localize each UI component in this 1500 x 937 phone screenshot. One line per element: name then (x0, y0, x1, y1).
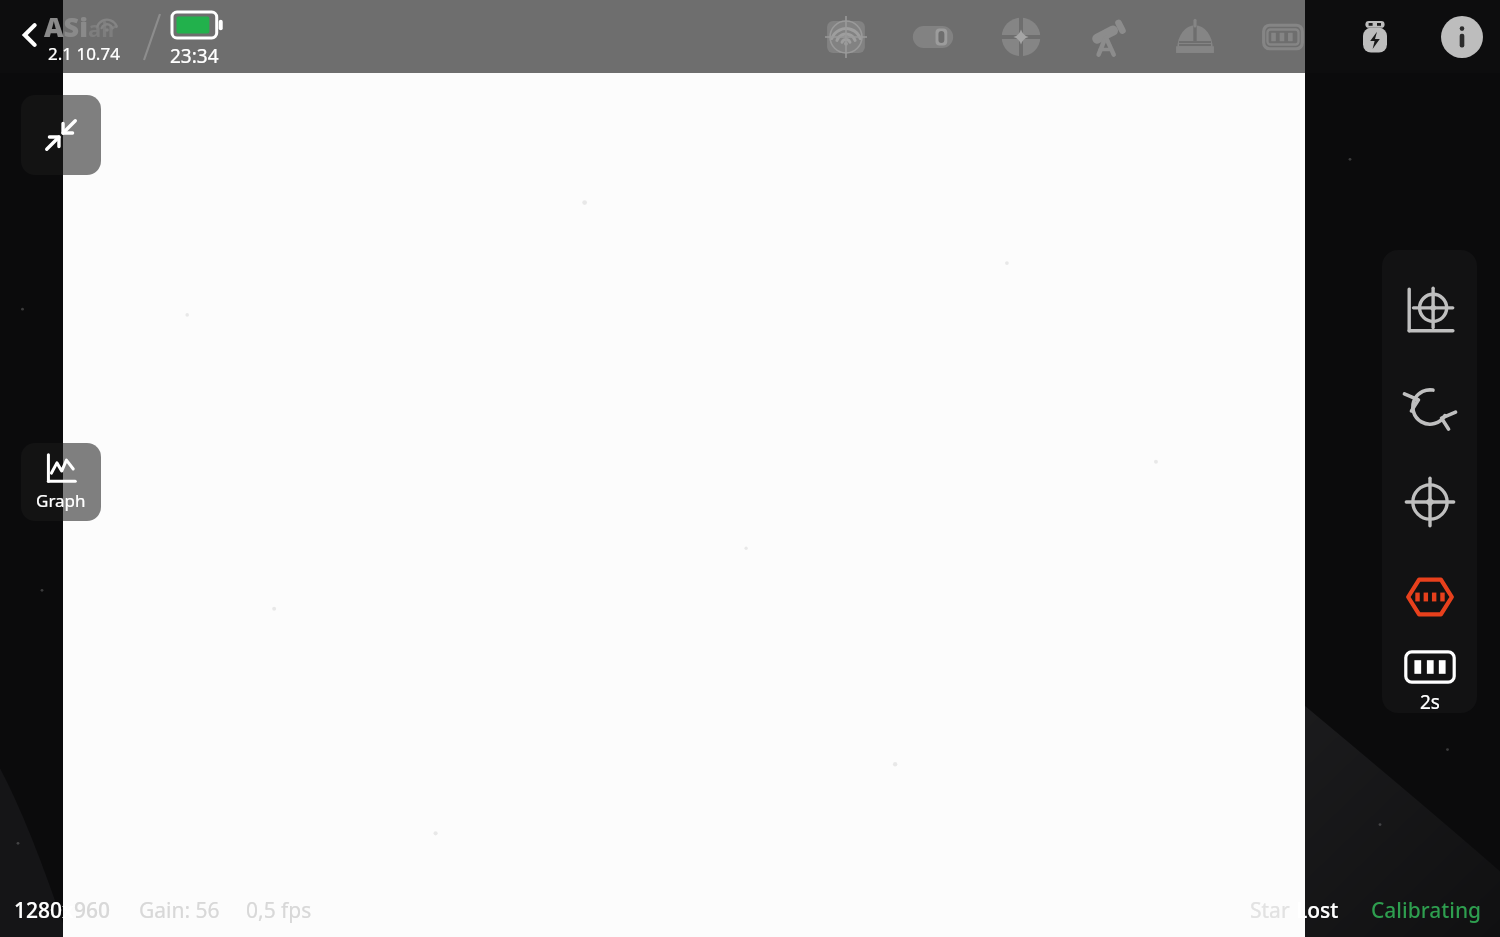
button[interactable]: Telescope mount (1083, 13, 1131, 61)
button[interactable]: Calibrate guiding (1382, 264, 1477, 359)
staticText: Gain: 56 (139, 896, 220, 925)
staticText: air (88, 13, 118, 43)
staticText: 1280x (14, 896, 74, 925)
staticText: 2s (1420, 689, 1440, 713)
staticText: Lost (1296, 896, 1339, 925)
button[interactable]: Wi-Fi guide (822, 13, 870, 61)
staticText: ASi (44, 8, 88, 45)
button[interactable]: Info (1437, 12, 1487, 62)
staticText: Star (1250, 896, 1296, 925)
button[interactable]: Select guide star (1382, 454, 1477, 549)
staticText: 2.1 10.74 (48, 42, 120, 65)
staticText: Calibrating (1371, 896, 1482, 925)
button[interactable]: Loop / restart (1382, 359, 1477, 454)
button[interactable]: EAF focuser (1259, 13, 1307, 61)
button[interactable]: Graph (21, 443, 101, 521)
button[interactable]: Back (10, 14, 52, 56)
button[interactable]: Stop (1382, 549, 1477, 644)
staticText: 23:34 (170, 43, 219, 69)
staticText: Graph (36, 489, 86, 512)
button[interactable]: Observatory dome (1171, 13, 1219, 61)
button[interactable]: Collapse (21, 95, 101, 175)
button[interactable]: Guide scope (997, 13, 1045, 61)
staticText: 960 (74, 896, 111, 925)
staticText: 0,5 fps (246, 896, 312, 925)
button[interactable]: Power (1350, 12, 1400, 62)
button[interactable]: 2s (1382, 644, 1477, 713)
button[interactable]: Camera (909, 13, 957, 61)
